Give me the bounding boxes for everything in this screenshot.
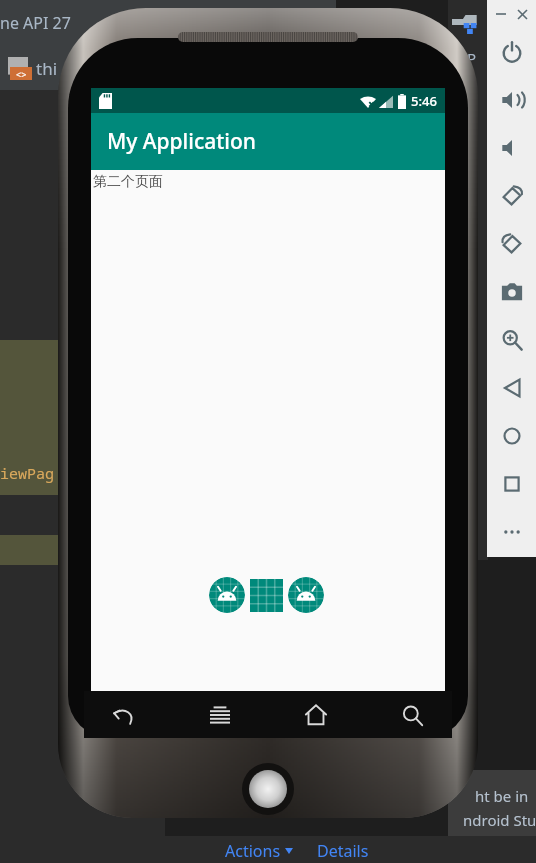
staticText: a — [466, 124, 480, 140]
button[interactable]: Volume up — [488, 76, 536, 124]
staticText: <> — [16, 68, 27, 80]
button[interactable]: Menu — [198, 693, 242, 737]
staticText: P — [466, 108, 480, 124]
button[interactable]: Android icon — [209, 577, 245, 613]
button[interactable]: Zoom — [488, 316, 536, 364]
staticText: t — [466, 188, 480, 204]
staticText: e — [466, 204, 480, 220]
button[interactable]: Close — [514, 6, 530, 22]
button[interactable]: Grid tile — [250, 579, 283, 612]
staticText: iewPag — [0, 463, 55, 483]
staticText: e — [466, 156, 480, 172]
staticText: P — [467, 48, 477, 68]
staticText: t — [466, 172, 480, 188]
button[interactable]: Actions — [225, 840, 293, 862]
button[interactable]: Home — [294, 693, 338, 737]
button[interactable]: More — [488, 508, 536, 556]
button[interactable]: Volume down — [488, 124, 536, 172]
button[interactable]: Rotate right — [488, 220, 536, 268]
button[interactable]: Minimize — [493, 6, 509, 22]
button[interactable]: Android icon — [288, 577, 324, 613]
staticText: 第二个页面 — [93, 173, 163, 191]
button[interactable]: Trackball — [242, 763, 294, 815]
button[interactable]: Search — [390, 693, 434, 737]
button[interactable]: Home — [488, 412, 536, 460]
staticText: thi — [36, 57, 58, 80]
staticText: Details — [317, 840, 369, 862]
button[interactable]: Overview — [488, 460, 536, 508]
staticText: ndroid Stu — [463, 810, 536, 830]
staticText: ht be in — [475, 786, 529, 806]
button[interactable]: Back — [488, 364, 536, 412]
button[interactable]: Screenshot — [488, 268, 536, 316]
staticText: ne API 27 — [0, 12, 71, 34]
staticText: Actions — [225, 840, 281, 862]
staticText: 5:46 — [411, 92, 437, 110]
button[interactable]: Details — [317, 840, 369, 862]
button[interactable]: Power — [488, 28, 536, 76]
button[interactable]: Rotate left — [488, 172, 536, 220]
button[interactable]: Back — [102, 693, 146, 737]
staticText: l — [466, 140, 480, 156]
staticText: My Application — [107, 127, 256, 156]
